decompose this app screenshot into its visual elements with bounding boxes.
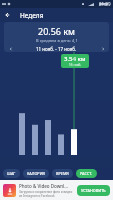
button[interactable]: ВРЕМЯ xyxy=(52,169,73,178)
button[interactable]: РАССТ. xyxy=(76,169,97,178)
button[interactable]: Previous week xyxy=(6,46,15,52)
staticText: РАССТ. xyxy=(80,171,93,176)
button[interactable]: ШАГ xyxy=(3,169,20,178)
button[interactable]: КАЛОРИЯ xyxy=(23,169,49,178)
staticText: В среднем в день: 4,1 xyxy=(36,38,78,43)
staticText: 21:29 xyxy=(99,1,111,7)
staticText: 11 нояб. - 17 нояб. xyxy=(36,46,77,52)
button[interactable]: УСТАНОВИТЬ xyxy=(77,185,110,196)
staticText: Неделя xyxy=(20,11,44,20)
staticText: 20.56 км xyxy=(38,25,76,37)
staticText: Загрузка и сохранение фото и видео из In… xyxy=(19,190,75,198)
staticText: Photo & Video Downl... xyxy=(19,183,69,189)
staticText: 16 нояб. xyxy=(69,63,82,67)
staticText: 3.54 км xyxy=(64,55,86,63)
button[interactable]: Back xyxy=(0,8,14,22)
button[interactable]: Next week xyxy=(98,46,107,52)
staticText: КАЛОРИЯ xyxy=(27,171,45,176)
staticText: ШАГ xyxy=(7,171,16,176)
staticText: УСТАНОВИТЬ xyxy=(81,188,106,193)
staticText: ВРЕМЯ xyxy=(56,171,69,176)
